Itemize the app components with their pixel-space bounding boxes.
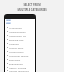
staticText: Advertising, PR	[9, 34, 26, 37]
staticText: Catering	[9, 42, 19, 45]
staticText: Charity work	[9, 46, 24, 49]
staticText: Sales	[6, 19, 11, 21]
button[interactable]: Charity work	[5, 45, 35, 49]
staticText: Customer service	[9, 54, 29, 57]
button[interactable]: Advertising, PR	[5, 33, 35, 37]
button[interactable]: Sales	[6, 19, 11, 21]
button[interactable]: Administration	[5, 29, 35, 33]
button[interactable]: Human resources	[5, 69, 35, 72]
staticText: Retail	[6, 22, 11, 24]
button[interactable]: Customer service	[5, 53, 35, 57]
staticText: Education	[9, 58, 21, 61]
button[interactable]: Construction	[5, 49, 35, 53]
button[interactable]: Engineering	[5, 61, 35, 65]
staticText: SELECT FROM	[23, 3, 41, 7]
staticText: Administration	[9, 30, 26, 33]
button[interactable]: Banking jobs	[5, 37, 35, 41]
staticText: Health, nursing	[9, 66, 27, 69]
staticText: Human resources	[9, 69, 29, 72]
button[interactable]: Health, nursing	[5, 65, 35, 69]
button[interactable]: Retail	[6, 22, 11, 24]
staticText: Construction	[9, 50, 24, 53]
staticText: Accounting	[9, 26, 22, 29]
staticText: MULTIPLE CATEGORIES	[17, 8, 47, 12]
staticText: Banking jobs	[9, 38, 24, 41]
button[interactable]: Catering	[5, 41, 35, 45]
button[interactable]: Accounting	[5, 25, 35, 29]
button[interactable]: Education	[5, 57, 35, 61]
staticText: Engineering	[9, 62, 23, 65]
